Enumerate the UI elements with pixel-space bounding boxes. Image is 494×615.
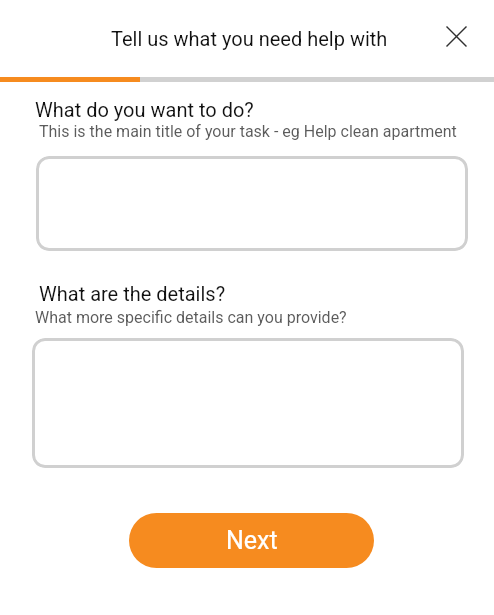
button[interactable]: Task title input field [36, 156, 468, 251]
staticText: What do you want to do? [35, 98, 254, 121]
button[interactable]: Close [436, 16, 476, 56]
staticText: What more specific details can you provi… [35, 308, 347, 327]
staticText: What are the details? [39, 282, 226, 305]
staticText: Tell us what you need help with [111, 27, 388, 50]
staticText: This is the main title of your task - eg… [39, 122, 457, 141]
staticText: Next [226, 526, 278, 555]
button[interactable]: Next [129, 513, 374, 568]
button[interactable]: Task details input field [32, 338, 464, 468]
